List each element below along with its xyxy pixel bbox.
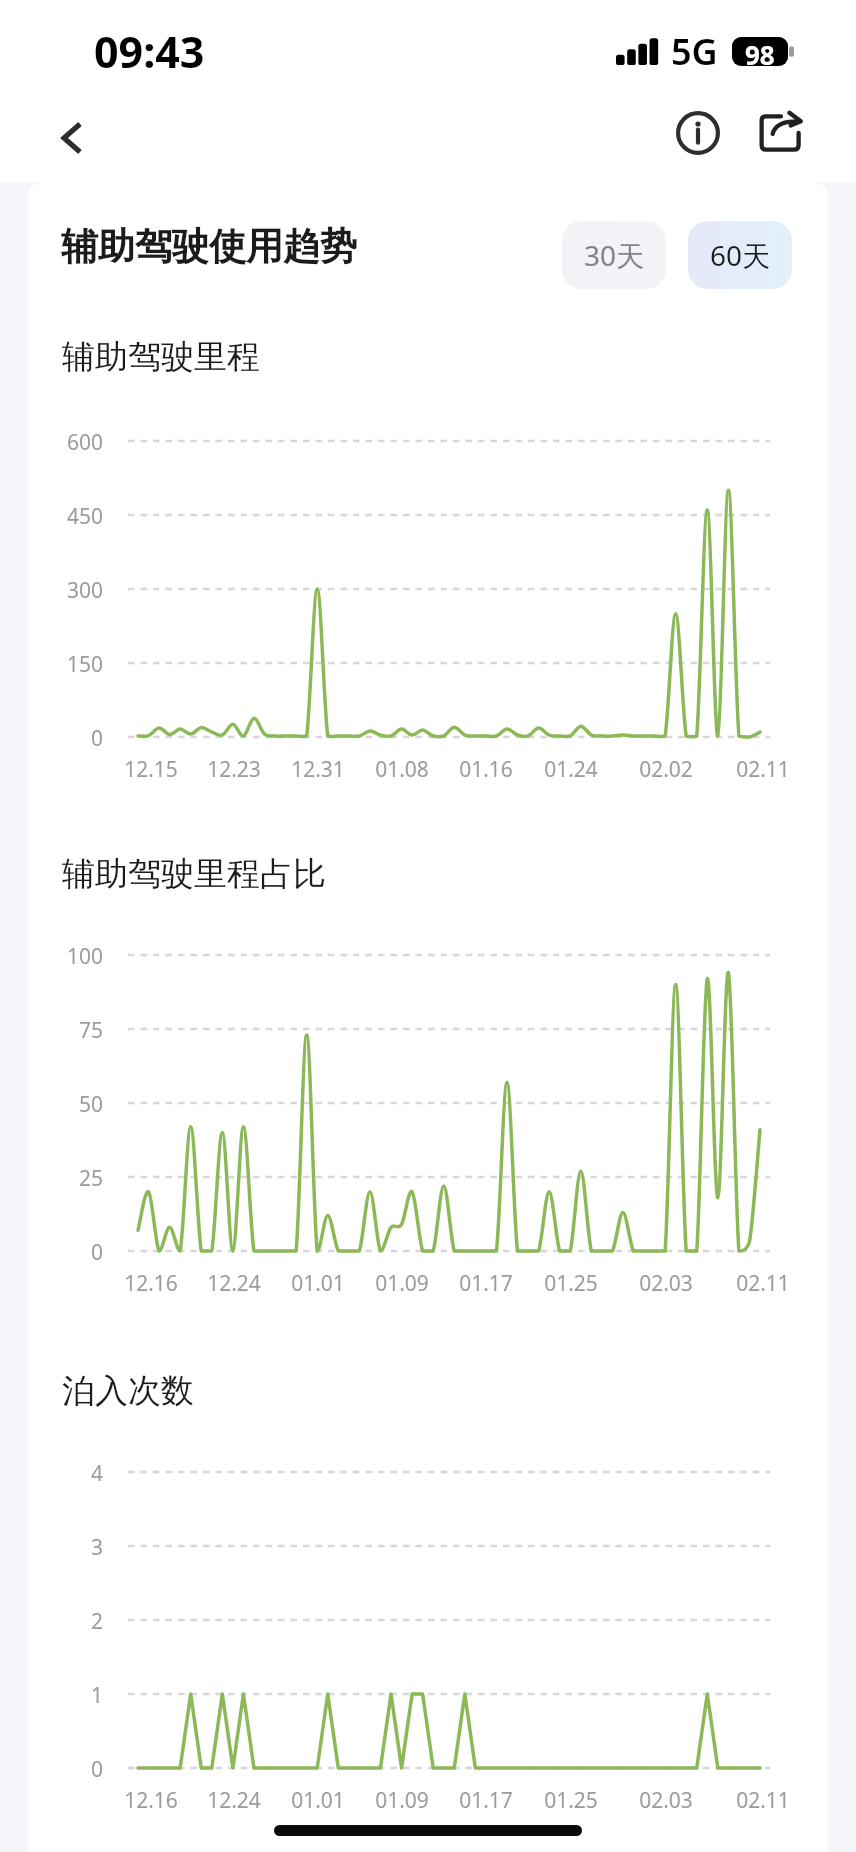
staticText: 01.25 [516,1786,626,1815]
staticText: 01.01 [263,1786,373,1815]
staticText: 01.17 [431,1786,541,1815]
button[interactable]: Info [664,99,732,167]
staticText: 12.15 [96,755,206,784]
staticText: 4 [45,1459,103,1488]
staticText: 0 [45,724,103,753]
staticText: 12.31 [263,755,373,784]
staticText: 150 [45,650,103,679]
staticText: 12.23 [179,755,289,784]
staticText: 01.09 [347,1786,457,1815]
staticText: 12.16 [96,1786,206,1815]
staticText: 1 [45,1681,103,1710]
button[interactable]: 30天 [562,221,666,289]
staticText: 600 [45,428,103,457]
staticText: 3 [45,1533,103,1562]
staticText: 12.16 [96,1269,206,1298]
staticText: 02.03 [611,1786,721,1815]
staticText: 25 [45,1164,103,1193]
staticText: 12.24 [179,1269,289,1298]
staticText: 09:43 [94,22,205,81]
staticText: 02.03 [611,1269,721,1298]
staticText: 辅助驾驶里程占比 [62,853,326,895]
staticText: 01.16 [431,755,541,784]
staticText: 02.11 [708,1269,818,1298]
staticText: 01.09 [347,1269,457,1298]
staticText: 0 [45,1238,103,1267]
staticText: 02.11 [708,755,818,784]
staticText: 450 [45,502,103,531]
staticText: 98 [745,37,775,66]
button[interactable]: Back [36,102,108,174]
staticText: 01.08 [347,755,457,784]
staticText: 01.17 [431,1269,541,1298]
staticText: 0 [45,1755,103,1784]
staticText: 泊入次数 [62,1370,194,1412]
staticText: 50 [45,1090,103,1119]
staticText: 01.25 [516,1269,626,1298]
button[interactable]: Share [747,99,815,167]
staticText: 01.24 [516,755,626,784]
staticText: 12.24 [179,1786,289,1815]
staticText: 300 [45,576,103,605]
staticText: 75 [45,1016,103,1045]
staticText: 辅助驾驶里程 [62,336,260,378]
staticText: 02.02 [611,755,721,784]
staticText: 30天 [584,236,645,274]
staticText: 60天 [710,236,771,274]
staticText: 01.01 [263,1269,373,1298]
button[interactable]: 60天 [688,221,792,289]
staticText: 辅助驾驶使用趋势 [61,223,357,270]
staticText: 2 [45,1607,103,1636]
staticText: 5G [671,27,718,76]
staticText: 02.11 [708,1786,818,1815]
staticText: 100 [45,942,103,971]
